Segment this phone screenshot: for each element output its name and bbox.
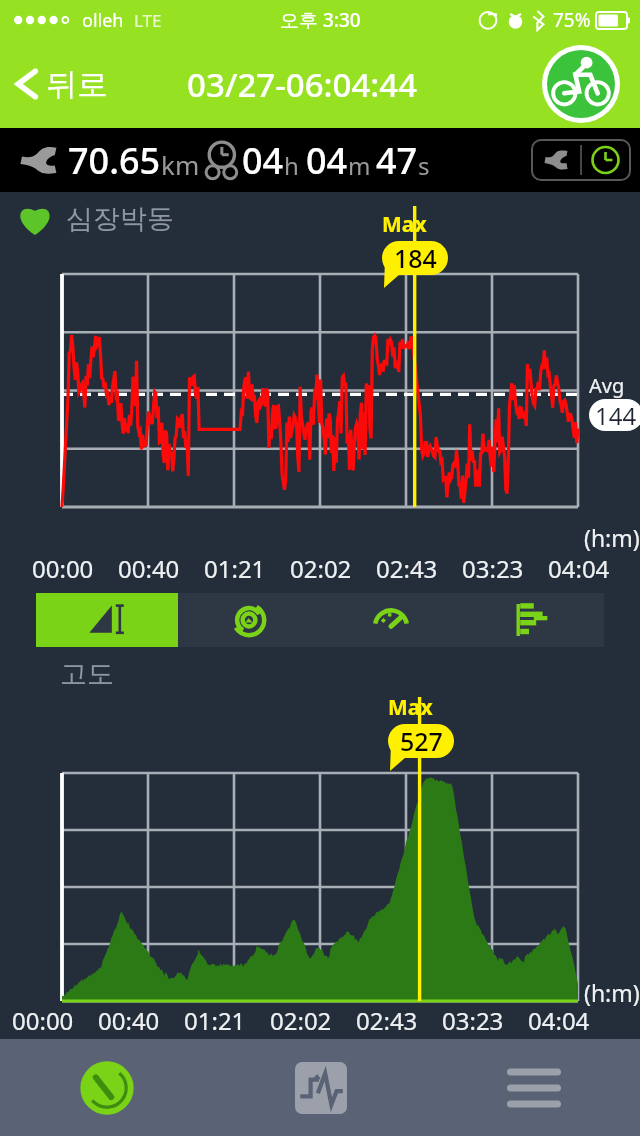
staticText: 01:21 bbox=[204, 552, 266, 585]
button[interactable]: Distance chart bbox=[36, 593, 178, 647]
staticText: 527 bbox=[400, 724, 443, 758]
staticText: 02:02 bbox=[290, 552, 352, 585]
staticText: 03/27-06:04:44 bbox=[187, 62, 418, 107]
staticText: 00:40 bbox=[98, 1004, 160, 1037]
button[interactable]: Activity history bbox=[214, 1039, 427, 1136]
button[interactable]: Speed chart bbox=[320, 593, 462, 647]
staticText: 144 bbox=[595, 399, 637, 432]
button[interactable]: Summary bbox=[462, 593, 604, 647]
staticText: 00:00 bbox=[32, 552, 94, 585]
staticText: 184 bbox=[394, 241, 437, 275]
button[interactable]: Route chart bbox=[178, 593, 320, 647]
staticText: 02:43 bbox=[356, 1004, 418, 1037]
staticText: (h:m) bbox=[584, 522, 640, 553]
staticText: LTE bbox=[134, 9, 162, 32]
staticText: 03:23 bbox=[442, 1004, 504, 1037]
button[interactable]: 뒤로 bbox=[14, 64, 108, 104]
button[interactable]: Cycling activity bbox=[540, 43, 622, 125]
staticText: Avg bbox=[589, 372, 625, 399]
button[interactable]: Dashboard bbox=[0, 1039, 214, 1136]
staticText: 02:43 bbox=[376, 552, 438, 585]
staticText: olleh bbox=[82, 8, 124, 33]
staticText: 01:21 bbox=[184, 1004, 246, 1037]
staticText: 오후 3:30 bbox=[280, 7, 361, 33]
button[interactable]: Toggle distance or time axis bbox=[532, 140, 630, 180]
staticText: h bbox=[284, 149, 299, 182]
staticText: 03:23 bbox=[462, 552, 524, 585]
staticText: km bbox=[161, 147, 200, 182]
staticText: m bbox=[348, 149, 371, 182]
staticText: 04 bbox=[242, 136, 284, 185]
staticText: 00:40 bbox=[118, 552, 180, 585]
staticText: 고도 bbox=[60, 657, 114, 691]
staticText: 04:04 bbox=[528, 1004, 590, 1037]
staticText: 75% bbox=[553, 7, 591, 33]
staticText: 02:02 bbox=[270, 1004, 332, 1037]
staticText: 47 bbox=[376, 136, 418, 185]
staticText: 심장박동 bbox=[66, 202, 174, 236]
button[interactable]: Menu bbox=[427, 1039, 640, 1136]
staticText: 뒤로 bbox=[46, 65, 108, 104]
staticText: 00:00 bbox=[12, 1004, 74, 1037]
staticText: Max bbox=[388, 693, 433, 722]
staticText: 04:04 bbox=[548, 552, 610, 585]
staticText: 04 bbox=[306, 136, 348, 185]
staticText: Max bbox=[382, 210, 427, 239]
staticText: 70.65 bbox=[68, 136, 161, 185]
staticText: s bbox=[418, 149, 430, 182]
staticText: (h:m) bbox=[584, 977, 640, 1008]
